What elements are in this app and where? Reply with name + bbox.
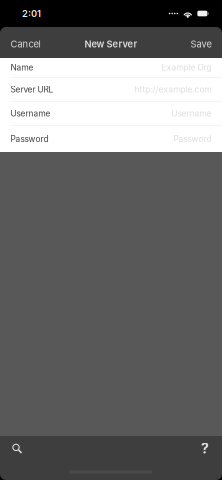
button[interactable]: Help xyxy=(188,436,222,460)
staticText: ? xyxy=(201,440,209,457)
staticText: Server URL xyxy=(10,85,53,95)
button[interactable]: Password xyxy=(0,126,222,152)
button[interactable]: Name xyxy=(0,58,222,78)
button[interactable]: Server URL xyxy=(0,78,222,102)
staticText: New Server xyxy=(84,38,137,50)
button[interactable]: Cancel xyxy=(0,27,51,58)
staticText: http://example.com xyxy=(134,85,211,95)
staticText: Example Org xyxy=(161,63,211,73)
button[interactable]: Search xyxy=(0,436,34,460)
staticText: Username xyxy=(171,109,211,119)
staticText: 2:01 xyxy=(22,8,41,19)
staticText: Password xyxy=(173,134,211,144)
staticText: Password xyxy=(10,134,48,144)
button[interactable]: Save xyxy=(180,27,222,58)
staticText: Cancel xyxy=(10,38,40,50)
staticText: Save xyxy=(190,38,211,50)
button[interactable]: Username xyxy=(0,102,222,126)
staticText: Username xyxy=(10,109,50,119)
staticText: Name xyxy=(10,63,33,73)
